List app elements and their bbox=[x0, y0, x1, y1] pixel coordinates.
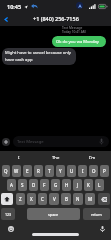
button[interactable]: H bbox=[62, 179, 71, 191]
staticText: W bbox=[14, 168, 19, 174]
button[interactable]: D bbox=[29, 179, 38, 191]
staticText: A bbox=[10, 182, 13, 188]
button[interactable]: Q bbox=[2, 165, 10, 177]
button[interactable]: Shift bbox=[1, 193, 13, 205]
button[interactable]: E bbox=[23, 165, 32, 177]
staticText: O bbox=[92, 168, 96, 174]
staticText: S bbox=[21, 182, 24, 188]
staticText: B bbox=[65, 196, 68, 202]
staticText: K bbox=[87, 182, 90, 188]
button[interactable]: M bbox=[85, 193, 95, 205]
button[interactable]: C bbox=[38, 193, 47, 205]
button[interactable]: 123 bbox=[1, 208, 15, 220]
staticText: J bbox=[77, 182, 79, 188]
button[interactable]: Delete bbox=[98, 193, 110, 205]
staticText: The bbox=[52, 155, 60, 161]
staticText: X bbox=[30, 196, 33, 202]
staticText: return bbox=[91, 212, 102, 217]
button[interactable]: Text Message bbox=[13, 136, 109, 147]
staticText: G bbox=[54, 182, 58, 188]
staticText: F bbox=[43, 182, 46, 188]
staticText: Ok do you wa Monday bbox=[56, 39, 99, 45]
staticText: P bbox=[103, 168, 106, 174]
button[interactable]: return bbox=[83, 208, 110, 220]
button[interactable]: I bbox=[0, 151, 37, 164]
button[interactable]: S bbox=[18, 179, 27, 191]
button[interactable]: O bbox=[89, 165, 98, 177]
staticText: space bbox=[48, 212, 59, 217]
button[interactable]: L bbox=[95, 179, 104, 191]
button[interactable]: Add attachment bbox=[1, 137, 11, 147]
staticText: +1 (840) 256-7156 bbox=[33, 15, 79, 22]
staticText: I bbox=[82, 168, 84, 174]
button[interactable]: T bbox=[45, 165, 54, 177]
staticText: C bbox=[41, 196, 44, 202]
staticText: R bbox=[37, 168, 40, 174]
button[interactable]: P bbox=[100, 165, 109, 177]
button[interactable]: R bbox=[34, 165, 43, 177]
button[interactable]: Z bbox=[16, 193, 25, 205]
staticText: I'm bbox=[89, 155, 96, 161]
staticText: T bbox=[48, 168, 51, 174]
button[interactable]: Y bbox=[56, 165, 65, 177]
button[interactable]: F bbox=[40, 179, 49, 191]
staticText: E bbox=[26, 168, 29, 174]
staticText: H bbox=[65, 182, 69, 188]
staticText: M bbox=[88, 196, 93, 202]
staticText: 10:45 bbox=[7, 3, 22, 10]
staticText: D bbox=[32, 182, 36, 188]
staticText: Text Message bbox=[62, 26, 83, 30]
button[interactable]: Ok do you wa Monday bbox=[52, 36, 106, 47]
staticText: N bbox=[76, 196, 80, 202]
button[interactable]: A bbox=[7, 179, 16, 191]
staticText: Y bbox=[59, 168, 62, 174]
staticText: Q bbox=[4, 168, 8, 174]
button[interactable]: K bbox=[84, 179, 93, 191]
staticText: Text Message bbox=[17, 139, 44, 145]
staticText: Z bbox=[19, 196, 22, 202]
button[interactable]: N bbox=[73, 193, 83, 205]
button[interactable]: Dictate bbox=[98, 225, 106, 233]
staticText: 123 bbox=[5, 212, 12, 217]
button[interactable]: U bbox=[67, 165, 76, 177]
button[interactable]: G bbox=[51, 179, 60, 191]
button[interactable]: space bbox=[27, 208, 80, 220]
staticText: Might have to cancel because only have c… bbox=[5, 50, 71, 62]
button[interactable]: Back bbox=[1, 14, 11, 24]
staticText: I bbox=[18, 155, 20, 161]
button[interactable]: J bbox=[73, 179, 82, 191]
staticText: U bbox=[70, 168, 74, 174]
staticText: L bbox=[98, 182, 101, 188]
button[interactable]: Emoji bbox=[7, 225, 15, 233]
button[interactable]: V bbox=[49, 193, 59, 205]
button[interactable]: X bbox=[27, 193, 36, 205]
button[interactable]: W bbox=[12, 165, 21, 177]
staticText: Today 10:41 AM bbox=[62, 30, 86, 34]
button[interactable]: The bbox=[37, 151, 74, 164]
staticText: V bbox=[53, 196, 56, 202]
button[interactable]: I'm bbox=[74, 151, 111, 164]
button[interactable]: I bbox=[78, 165, 87, 177]
button[interactable]: Might have to cancel because only have c… bbox=[2, 48, 76, 65]
button[interactable]: B bbox=[61, 193, 71, 205]
